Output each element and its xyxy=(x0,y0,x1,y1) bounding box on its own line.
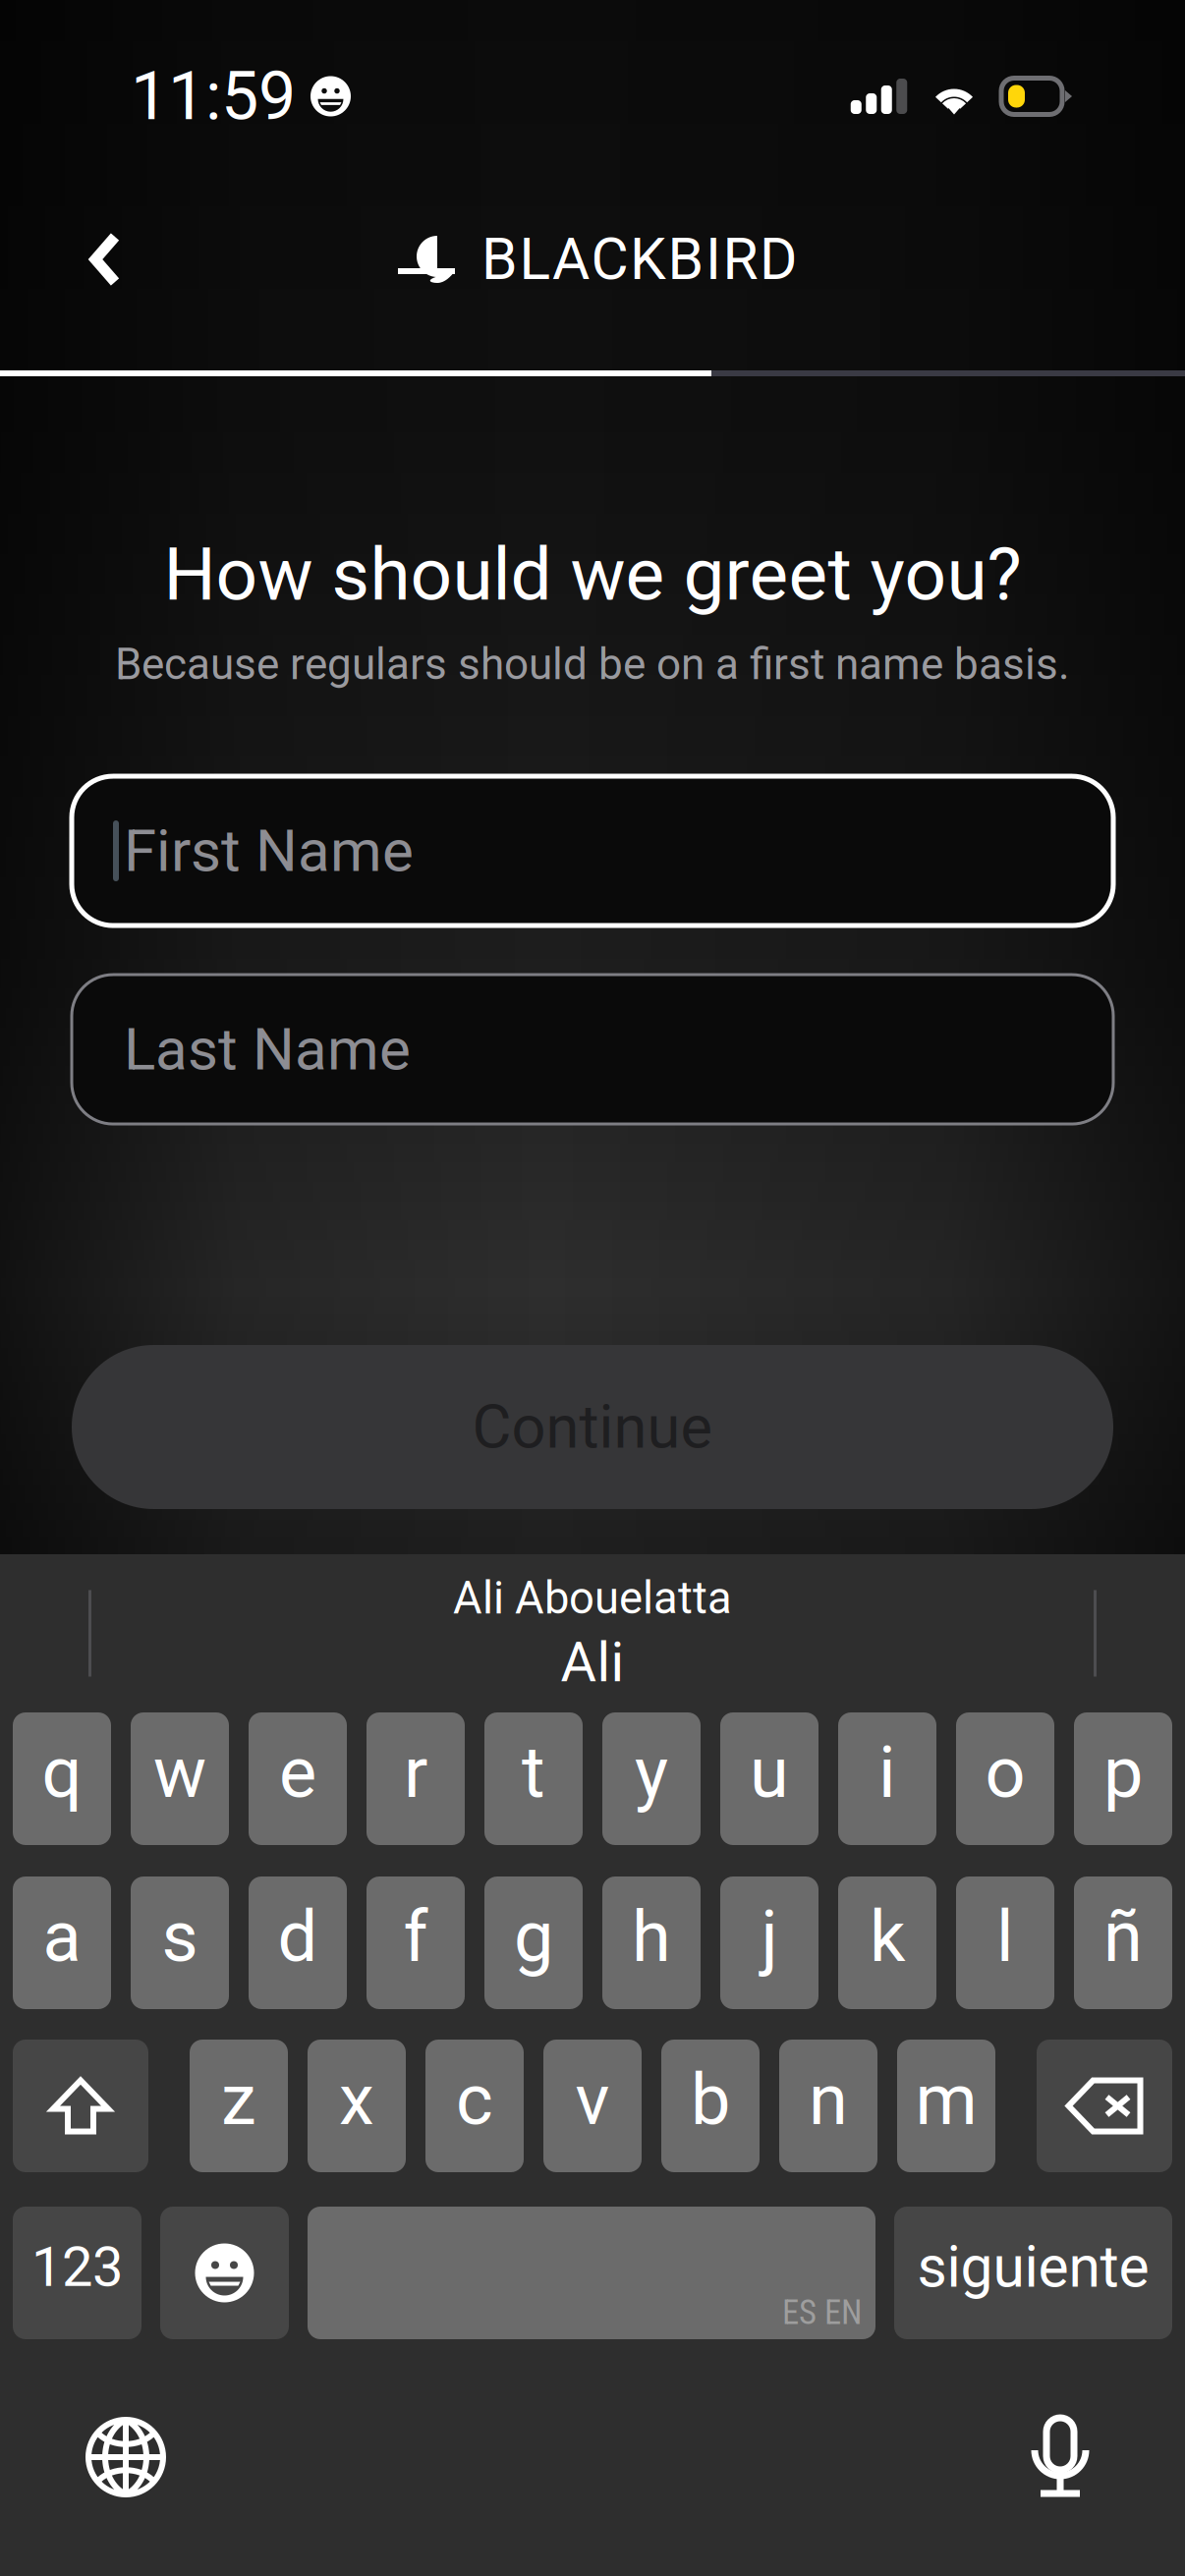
button[interactable]: Delete xyxy=(1037,2040,1172,2172)
staticText: siguiente xyxy=(917,2233,1149,2301)
button[interactable]: j xyxy=(720,1876,818,2009)
staticText: t xyxy=(522,1731,545,1814)
button[interactable]: h xyxy=(602,1876,701,2009)
button[interactable]: n xyxy=(779,2040,877,2172)
staticText: How should we greet you? xyxy=(164,532,1021,617)
staticText: v xyxy=(575,2059,610,2141)
staticText: Ali xyxy=(561,1630,624,1695)
button[interactable]: Emoji keyboard xyxy=(160,2207,289,2339)
button[interactable]: Change keyboard xyxy=(52,2388,199,2526)
staticText: Because regulars should be on a first na… xyxy=(115,639,1070,690)
button[interactable]: z xyxy=(190,2040,288,2172)
staticText: m xyxy=(915,2059,977,2141)
button[interactable]: e xyxy=(249,1712,347,1845)
staticText: j xyxy=(761,1895,778,1978)
button[interactable]: b xyxy=(661,2040,760,2172)
button[interactable]: siguiente xyxy=(894,2207,1172,2339)
button[interactable]: a xyxy=(13,1876,111,2009)
staticText: f xyxy=(403,1895,428,1978)
staticText: First Name xyxy=(124,816,414,885)
button[interactable]: ñ xyxy=(1074,1876,1172,2009)
button[interactable]: o xyxy=(956,1712,1054,1845)
staticText: k xyxy=(870,1895,905,1978)
button[interactable]: f xyxy=(367,1876,465,2009)
button[interactable]: Dictation xyxy=(987,2388,1134,2526)
button[interactable]: t xyxy=(484,1712,583,1845)
button[interactable]: l xyxy=(956,1876,1054,2009)
button[interactable]: s xyxy=(131,1876,229,2009)
staticText: g xyxy=(514,1895,553,1978)
staticText: b xyxy=(691,2059,730,2141)
staticText: p xyxy=(1103,1731,1143,1814)
button[interactable]: k xyxy=(838,1876,936,2009)
button[interactable]: y xyxy=(602,1712,701,1845)
staticText: c xyxy=(456,2059,493,2141)
staticText: 11:59 xyxy=(131,57,296,135)
staticText: a xyxy=(43,1895,81,1978)
button[interactable]: u xyxy=(720,1712,818,1845)
staticText: 123 xyxy=(31,2235,123,2299)
staticText: l xyxy=(996,1895,1014,1978)
staticText: ñ xyxy=(1103,1895,1143,1978)
staticText: z xyxy=(221,2059,256,2141)
button[interactable]: Shift xyxy=(13,2040,148,2172)
button[interactable]: m xyxy=(897,2040,995,2172)
staticText: w xyxy=(153,1731,206,1814)
staticText: ES EN xyxy=(782,2292,862,2332)
staticText: s xyxy=(162,1895,198,1978)
button[interactable]: 123 xyxy=(13,2207,141,2339)
staticText: n xyxy=(809,2059,848,2141)
button[interactable]: c xyxy=(425,2040,524,2172)
button[interactable]: i xyxy=(838,1712,936,1845)
staticText: o xyxy=(985,1731,1025,1814)
staticText: Continue xyxy=(472,1392,713,1462)
staticText: Ali Abouelatta xyxy=(453,1572,732,1624)
staticText: y xyxy=(635,1731,668,1814)
staticText: BLACKBIRD xyxy=(481,226,798,293)
button[interactable]: q xyxy=(13,1712,111,1845)
staticText: q xyxy=(42,1731,82,1814)
staticText: h xyxy=(632,1895,671,1978)
button[interactable]: g xyxy=(484,1876,583,2009)
button[interactable]: Space xyxy=(308,2207,875,2339)
button[interactable]: p xyxy=(1074,1712,1172,1845)
button[interactable]: r xyxy=(367,1712,465,1845)
button[interactable]: Back xyxy=(50,208,160,310)
staticText: e xyxy=(279,1731,316,1814)
staticText: i xyxy=(878,1731,896,1814)
button[interactable]: x xyxy=(308,2040,406,2172)
button[interactable]: v xyxy=(543,2040,642,2172)
button[interactable]: w xyxy=(131,1712,229,1845)
staticText: r xyxy=(404,1731,427,1814)
staticText: d xyxy=(278,1895,318,1978)
staticText: u xyxy=(750,1731,789,1814)
button[interactable]: Continue xyxy=(72,1345,1113,1509)
staticText: x xyxy=(339,2059,374,2141)
staticText: Last Name xyxy=(124,1015,411,1084)
button[interactable]: d xyxy=(249,1876,347,2009)
